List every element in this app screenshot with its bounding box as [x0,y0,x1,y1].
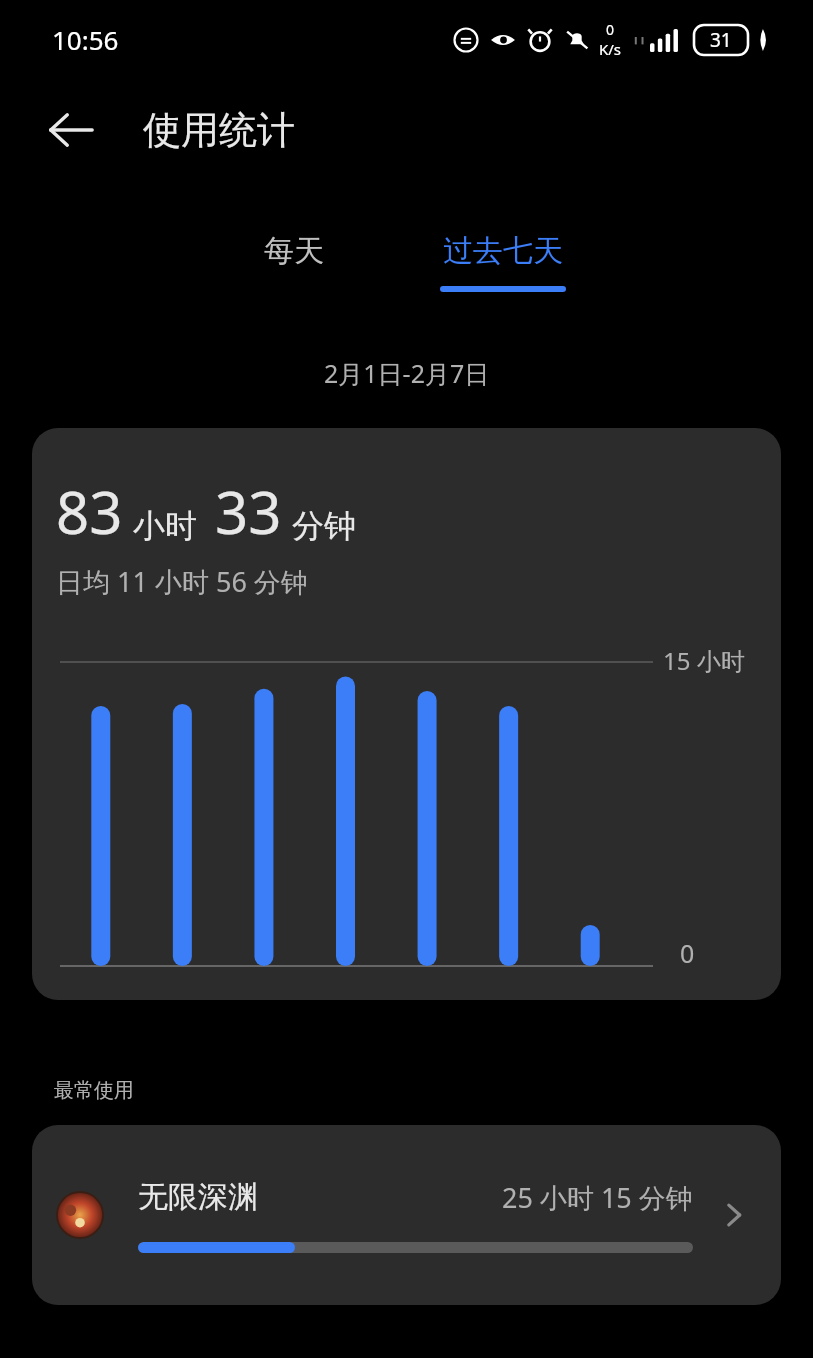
button[interactable]: 无限深渊 [32,1125,781,1305]
staticText: 小时 [133,506,197,546]
staticText: 使用统计 [143,106,295,154]
staticText: 0 [680,936,695,970]
staticText: 过去七天 [443,232,563,270]
staticText: K/s [599,39,622,59]
button[interactable]: 返回 [38,97,104,163]
button[interactable]: 每天 [234,226,354,298]
staticText: 83 [56,472,123,551]
staticText: 31 [710,27,732,53]
staticText: 2月1日-2月7日 [324,356,490,390]
staticText: 最常使用 [54,1078,134,1103]
staticText: 无限深渊 [138,1178,258,1216]
staticText: 日均 11 小时 56 分钟 [56,563,308,600]
staticText: 15 小时 [663,644,745,677]
button[interactable]: 过去七天 [426,226,580,298]
button[interactable]: 83 [32,428,781,1000]
staticText: 每天 [264,232,324,270]
staticText: 10:56 [52,22,119,57]
staticText: 33 [215,472,282,551]
staticText: 25 小时 15 分钟 [502,1179,693,1216]
staticText: 0 [606,20,615,39]
button[interactable]: 查看详情 [707,1188,761,1242]
staticText: 分钟 [292,506,356,546]
